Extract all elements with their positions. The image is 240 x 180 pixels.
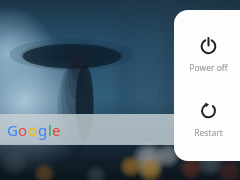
staticText: o (28, 120, 38, 140)
staticText: G (7, 120, 18, 140)
staticText: g (38, 120, 48, 140)
button[interactable]: G (0, 114, 240, 145)
button[interactable]: Power off (174, 36, 240, 74)
staticText: Say "Ok (173, 124, 206, 136)
staticText: o (18, 120, 28, 140)
button[interactable]: Restart (174, 101, 240, 139)
staticText: Power off (189, 62, 228, 74)
staticText: e (52, 120, 61, 140)
staticText: Restart (194, 127, 223, 139)
staticText: l (48, 120, 52, 140)
